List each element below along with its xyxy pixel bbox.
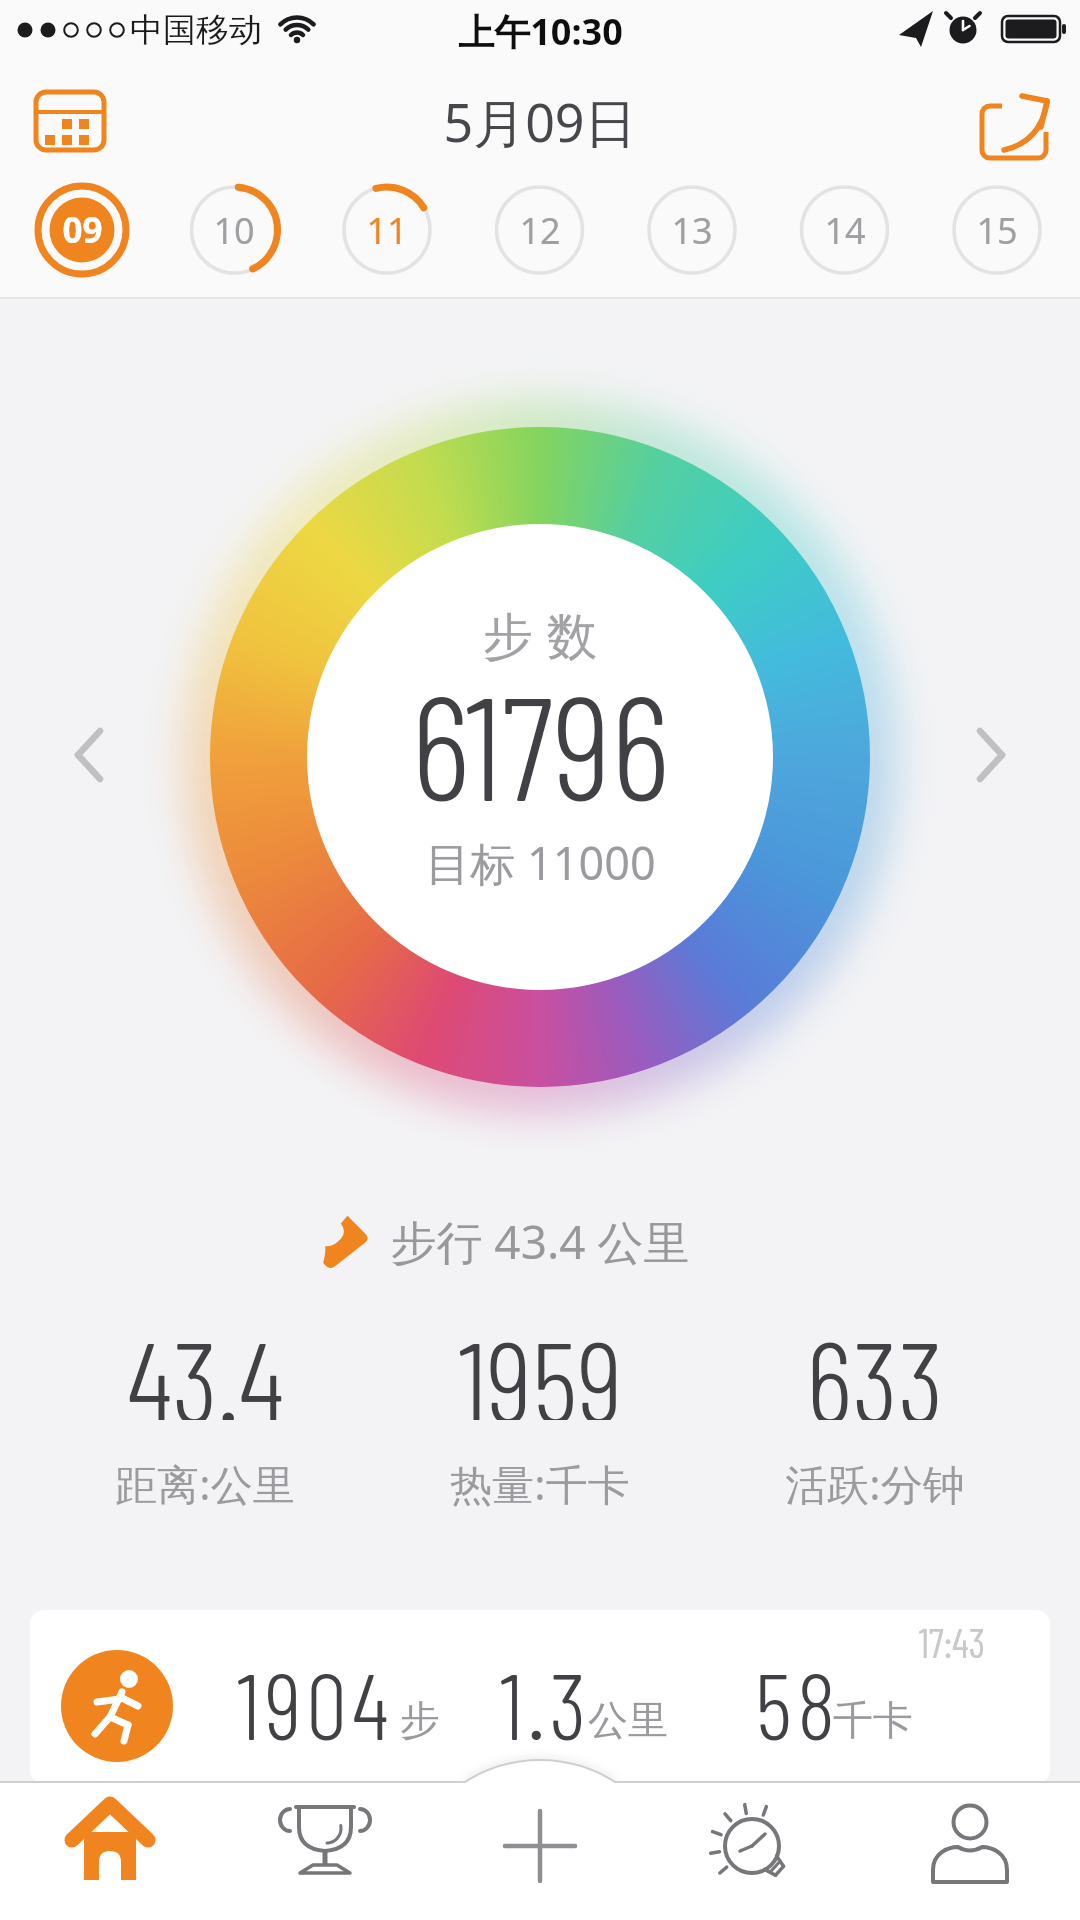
button[interactable] [341, 184, 433, 276]
staticText: 11 [366, 206, 408, 255]
button[interactable] [36, 184, 128, 276]
staticText: 1959 [458, 1310, 623, 1420]
staticText: 距离:公里 [115, 1455, 295, 1507]
staticText: 09 [62, 206, 103, 254]
staticText: 目标 11000 [425, 832, 656, 892]
staticText: 步 [400, 1695, 440, 1745]
staticText: 43.4 [127, 1310, 284, 1420]
button[interactable] [189, 184, 281, 276]
button[interactable] [965, 90, 1060, 168]
staticText: 58 [755, 1648, 841, 1744]
button[interactable] [950, 715, 1030, 795]
staticText: 活跃:分钟 [785, 1455, 965, 1507]
staticText: 12 [519, 206, 561, 255]
button[interactable] [50, 715, 130, 795]
staticText: 上午10:30 [458, 7, 623, 51]
staticText: 633 [806, 1310, 944, 1420]
button[interactable] [900, 1786, 1040, 1916]
staticText: 15 [976, 206, 1018, 255]
button[interactable] [799, 184, 891, 276]
button[interactable] [470, 1786, 610, 1916]
staticText: 1904 [237, 1648, 394, 1744]
staticText: 5月09日 [443, 86, 637, 148]
button[interactable] [255, 1786, 395, 1916]
staticText: 17:43 [918, 1618, 985, 1662]
staticText: 14 [824, 206, 866, 255]
staticText: 10 [213, 206, 255, 255]
staticText: 步数 [476, 606, 604, 668]
staticText: 步行 43.4 公里 [390, 1210, 690, 1266]
staticText: 13 [671, 206, 713, 255]
staticText: 热量:千卡 [450, 1455, 630, 1507]
staticText: 61796 [411, 655, 670, 805]
staticText: 千卡 [833, 1695, 913, 1745]
button[interactable] [30, 1610, 1050, 1784]
button[interactable] [685, 1786, 825, 1916]
button[interactable] [494, 184, 586, 276]
button[interactable] [40, 1786, 180, 1916]
staticText: 公里 [588, 1695, 668, 1745]
staticText: 中国移动 [130, 9, 262, 51]
staticText: 1.3 [500, 1648, 592, 1744]
button[interactable] [952, 184, 1044, 276]
button[interactable] [25, 82, 115, 160]
button[interactable] [646, 184, 738, 276]
